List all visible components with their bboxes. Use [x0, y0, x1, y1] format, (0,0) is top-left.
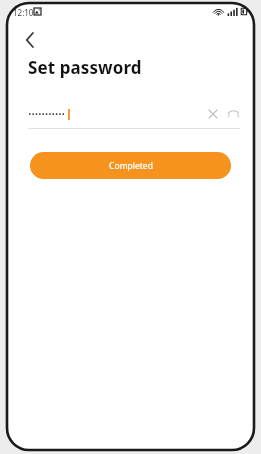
button[interactable]: Clear	[28, 99, 240, 129]
staticText: Completed	[109, 160, 153, 172]
button[interactable]: Back	[15, 25, 45, 55]
button[interactable]: Show password	[224, 105, 242, 123]
button[interactable]: Completed	[30, 152, 231, 179]
staticText: 12:10	[13, 7, 34, 18]
button[interactable]: Clear	[204, 105, 222, 123]
staticText: Set password	[28, 56, 142, 79]
